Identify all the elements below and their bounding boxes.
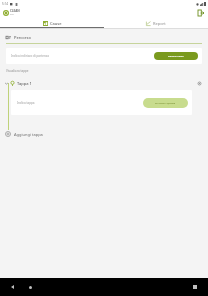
staticText: Report [153,21,166,26]
button[interactable]: Impostazioni tappa [196,80,202,86]
button[interactable]: CLEAN [3,9,20,16]
button[interactable]: Report [104,18,208,28]
button[interactable]: Cause [0,18,104,28]
button[interactable]: IMPOSTA INIZIO [154,52,198,60]
staticText: 5:14 [2,2,8,6]
staticText: Visualizza tappe [6,69,29,73]
button[interactable]: Percorso [6,35,202,40]
button[interactable]: SCANSIONA QRCODE [143,98,188,108]
staticText: Tappa 1 [17,81,32,86]
staticText: IMPOSTA INIZIO [168,55,184,58]
staticText: Indica tappa [17,101,35,105]
button[interactable]: Aggiungi tappa [5,129,202,139]
button[interactable]: Home [25,282,35,292]
button[interactable]: Back [8,282,18,292]
button[interactable]: Recents [190,282,200,292]
staticText: Aggiungi tappa [14,132,43,137]
staticText: Indica indirizzo di partenza [11,54,49,58]
button[interactable]: Logout [196,8,205,17]
staticText: Cause [50,21,62,26]
staticText: CLEAN [10,9,20,13]
button[interactable]: Tappa 1 [5,78,202,88]
staticText: SCANSIONA QRCODE [155,102,176,105]
staticText: CITY [10,13,15,16]
staticText: Percorso [14,35,31,40]
